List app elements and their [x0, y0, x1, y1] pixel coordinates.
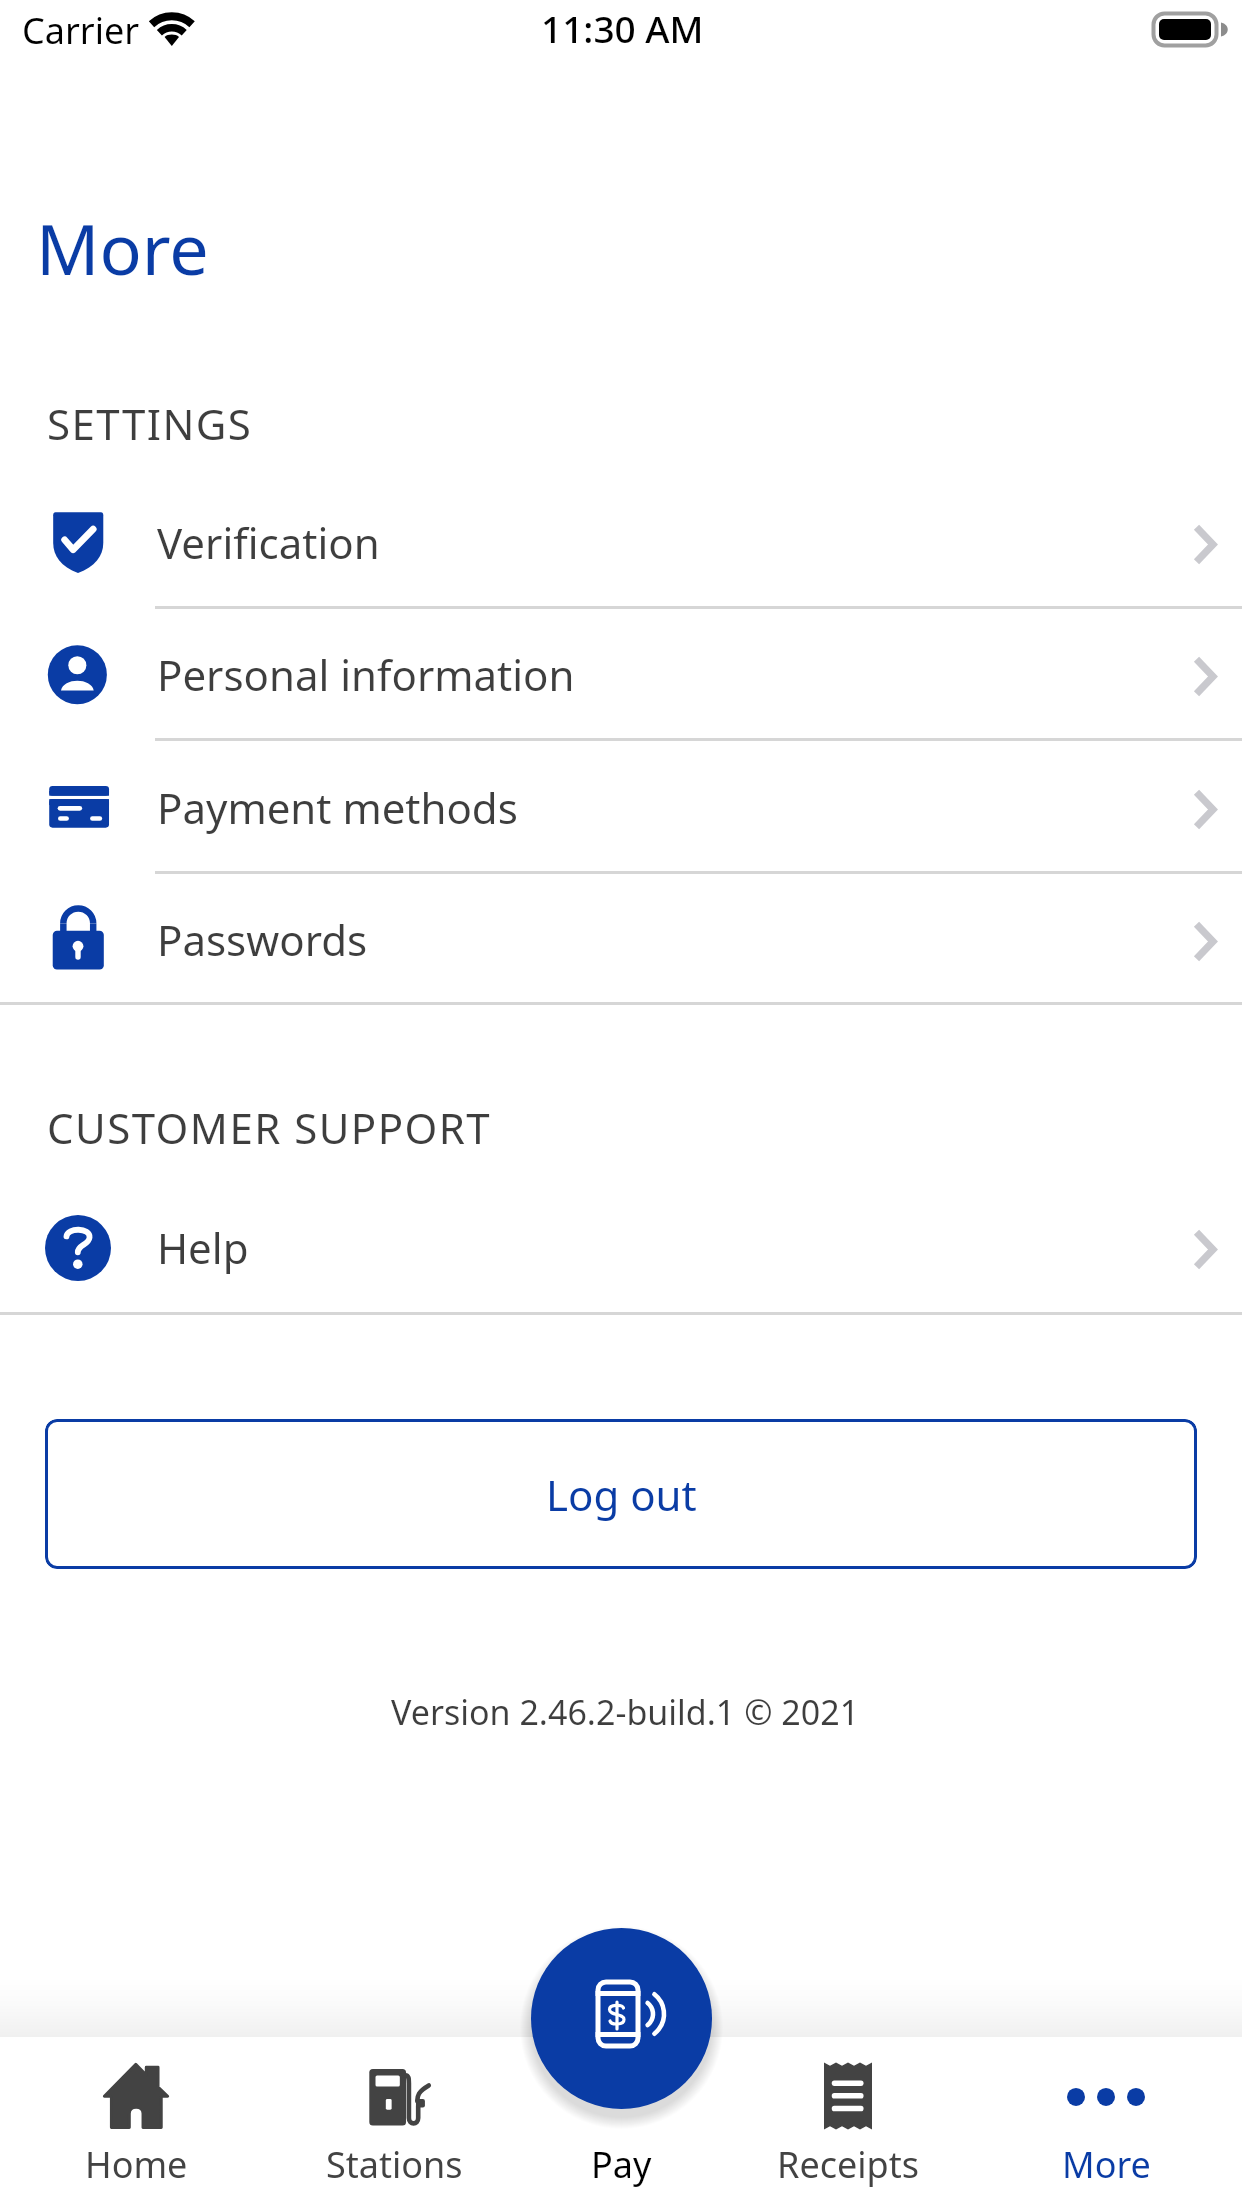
button[interactable]: Payment methods	[0, 741, 1242, 874]
staticText: Version 2.46.2-build.1 © 2021	[391, 1689, 860, 1735]
staticText: Verification	[157, 514, 380, 571]
staticText: Carrier	[22, 6, 140, 55]
staticText: Help	[157, 1219, 249, 1276]
button[interactable]: Personal information	[0, 608, 1242, 741]
button[interactable]: Pay	[531, 1928, 712, 2109]
button[interactable]: Receipts	[725, 2037, 970, 2208]
staticText: Payment methods	[157, 779, 518, 836]
button[interactable]: Home	[0, 2037, 272, 2208]
button[interactable]: Passwords	[0, 873, 1242, 1006]
staticText: Pay	[591, 2140, 652, 2189]
staticText: SETTINGS	[47, 395, 253, 452]
button[interactable]: Pay	[517, 2037, 725, 2208]
button[interactable]: More	[970, 2037, 1242, 2208]
staticText: Home	[85, 2140, 188, 2189]
button[interactable]: Log out	[45, 1419, 1197, 1569]
staticText: More	[36, 200, 209, 295]
button[interactable]: Verification	[0, 476, 1242, 609]
button[interactable]: Stations	[272, 2037, 517, 2208]
staticText: Passwords	[157, 911, 368, 968]
staticText: 11:30 AM	[541, 3, 704, 53]
staticText: Stations	[326, 2140, 463, 2189]
staticText: Receipts	[777, 2140, 919, 2189]
staticText: More	[1062, 2140, 1151, 2189]
staticText: CUSTOMER SUPPORT	[47, 1099, 492, 1156]
staticText: Log out	[546, 1466, 697, 1523]
staticText: Personal information	[157, 646, 575, 703]
button[interactable]: Help	[0, 1181, 1242, 1314]
